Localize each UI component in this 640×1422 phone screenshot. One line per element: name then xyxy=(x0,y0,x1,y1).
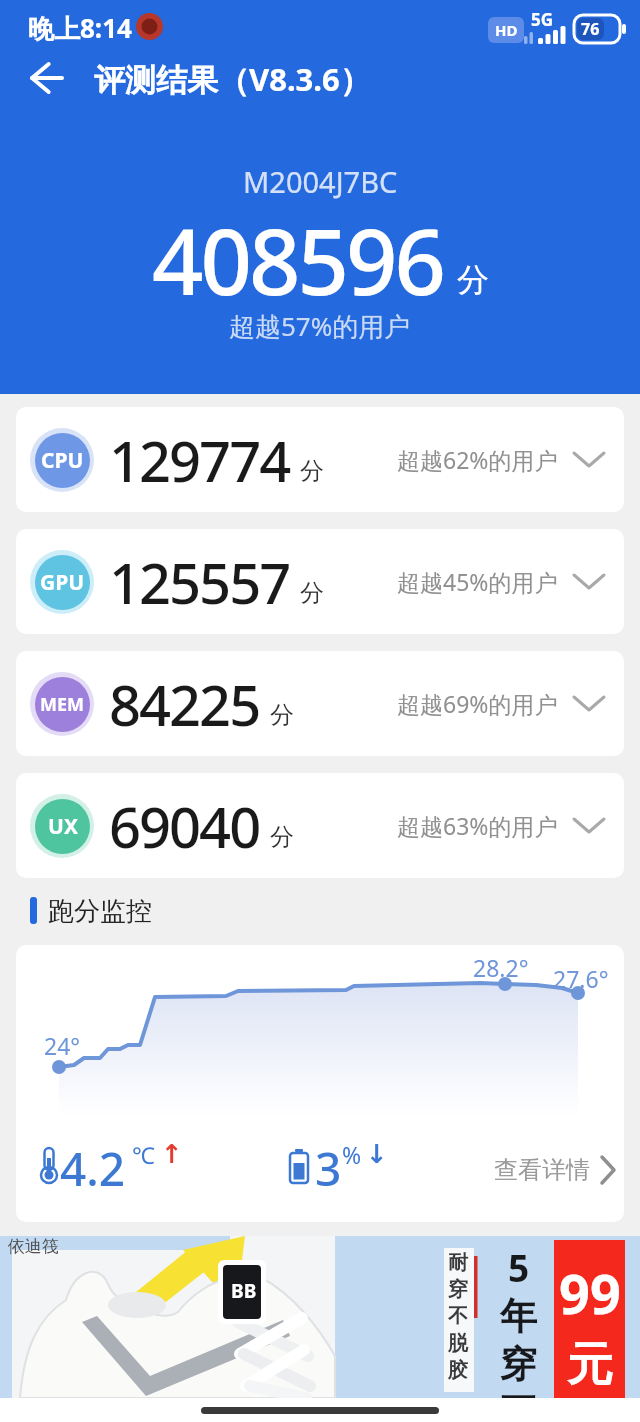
staticText: 分 xyxy=(300,578,324,608)
staticText: ↓ xyxy=(366,1139,388,1169)
staticText: 穿 xyxy=(448,1277,468,1302)
staticText: 超越57%的用户 xyxy=(229,308,411,344)
staticText: 年 xyxy=(500,1293,537,1340)
staticText: 脱 xyxy=(448,1331,468,1356)
staticText: 超越62%的用户 xyxy=(397,444,558,475)
button[interactable]: 依迪筏 xyxy=(0,1236,640,1398)
staticText: 超越69%的用户 xyxy=(397,688,558,719)
staticText: 5 xyxy=(508,1242,530,1292)
staticText: 分 xyxy=(270,822,294,852)
staticText: 查看详情 xyxy=(494,1155,590,1185)
staticText: 408596 xyxy=(152,199,443,322)
staticText: 84225 xyxy=(109,666,260,742)
staticText: 不 xyxy=(500,1389,537,1404)
staticText: M2004J7BC xyxy=(243,162,398,201)
staticText: 跑分监控 xyxy=(48,895,152,928)
staticText: 99 xyxy=(559,1256,621,1330)
staticText: 超越45%的用户 xyxy=(397,566,558,597)
staticText: UX xyxy=(48,812,78,841)
staticText: ↑ xyxy=(161,1139,183,1169)
staticText: 评测结果（V8.3.6） xyxy=(94,58,371,100)
staticText: 晚上8:14 xyxy=(28,10,132,46)
staticText: 胶 xyxy=(448,1358,468,1383)
staticText: 分 xyxy=(300,456,324,486)
button[interactable]: 查看详情 xyxy=(494,1155,616,1185)
staticText: % xyxy=(342,1139,362,1170)
staticText: 穿 xyxy=(500,1341,537,1388)
staticText: 125557 xyxy=(109,544,290,620)
staticText: 依迪筏 xyxy=(8,1236,59,1257)
staticText: 69040 xyxy=(109,788,260,864)
staticText: CPU xyxy=(41,446,84,475)
staticText: GPU xyxy=(40,568,85,597)
staticText: 分 xyxy=(457,260,489,300)
button[interactable]: MEM xyxy=(16,651,624,756)
staticText: MEM xyxy=(40,692,85,717)
staticText: 76 xyxy=(581,18,600,40)
staticText: 129774 xyxy=(109,422,290,498)
staticText: 28.2° xyxy=(473,952,529,983)
staticText: 4.2 xyxy=(60,1137,126,1200)
staticText: 耐 xyxy=(448,1250,468,1275)
staticText: 分 xyxy=(270,700,294,730)
staticText: 超越63%的用户 xyxy=(397,810,558,841)
staticText: 3 xyxy=(315,1137,342,1200)
staticText: 24° xyxy=(44,1030,81,1061)
staticText: BB xyxy=(231,1278,257,1304)
button[interactable] xyxy=(30,62,64,94)
staticText: ℃ xyxy=(132,1139,155,1170)
button[interactable]: UX xyxy=(16,773,624,878)
button[interactable]: CPU xyxy=(16,407,624,512)
staticText: 5G xyxy=(531,8,554,31)
staticText: 27.6° xyxy=(553,963,609,994)
staticText: 不 xyxy=(448,1304,468,1329)
button[interactable]: 24° xyxy=(16,945,624,1222)
button[interactable]: GPU xyxy=(16,529,624,634)
staticText: 元 xyxy=(567,1336,613,1394)
staticText: HD xyxy=(495,20,518,40)
